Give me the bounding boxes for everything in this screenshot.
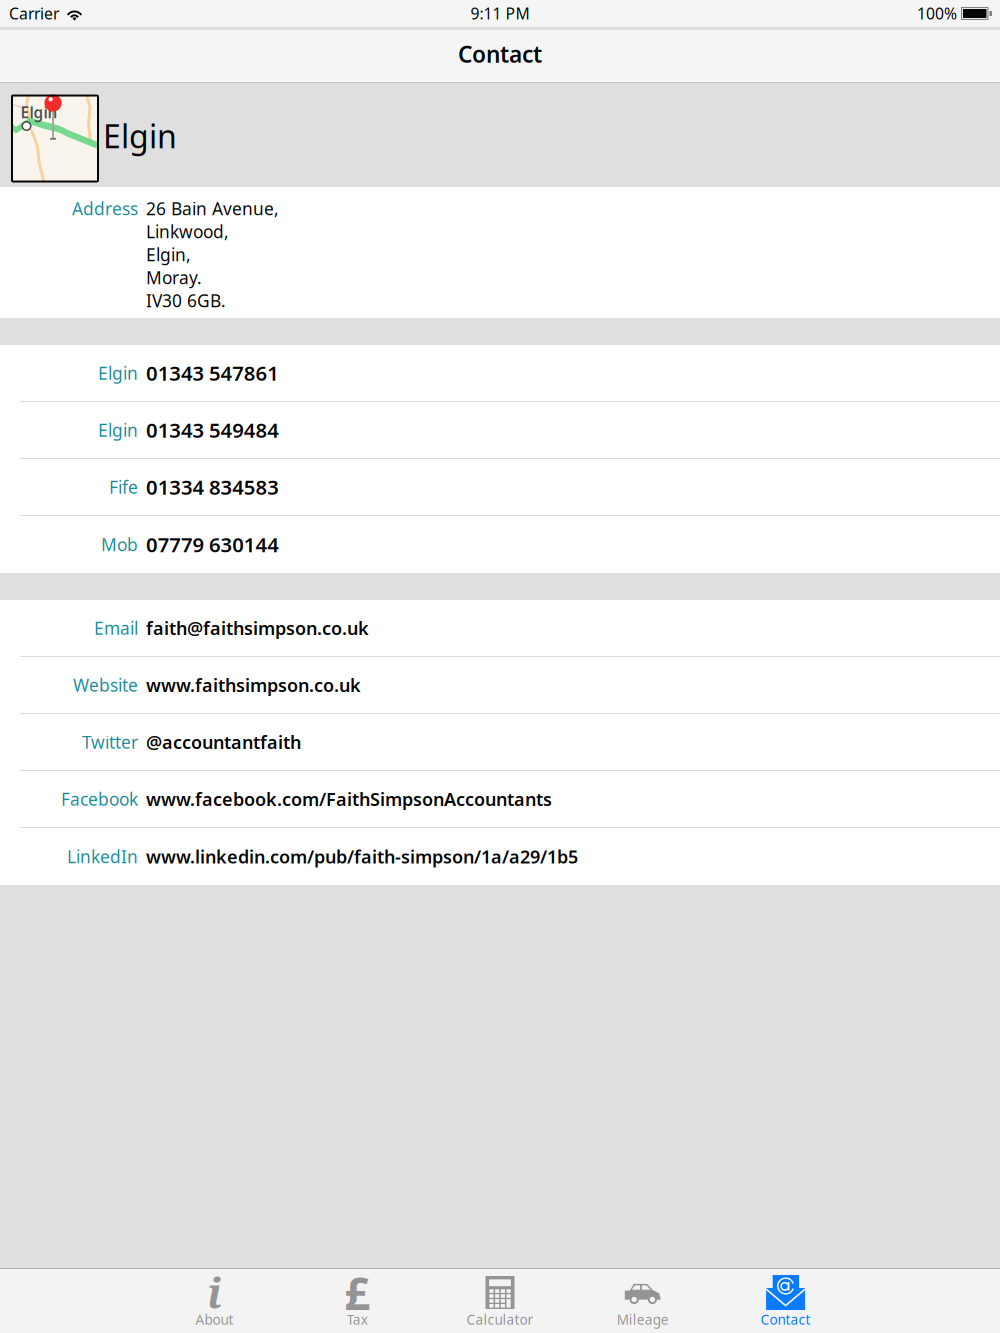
button[interactable]: Elgin	[0, 345, 1000, 402]
staticText: Contact	[458, 39, 542, 69]
staticText: @accountantfaith	[146, 730, 301, 754]
staticText: Carrier	[9, 3, 59, 24]
button[interactable]: Fife	[0, 459, 1000, 516]
staticText: Moray.	[146, 266, 202, 289]
staticText: Contact	[761, 1310, 811, 1329]
staticText: Linkwood,	[146, 220, 229, 243]
button[interactable]: Elgin	[0, 402, 1000, 459]
staticText: 100%	[917, 3, 957, 24]
button[interactable]: Website	[0, 657, 1000, 714]
button[interactable]: Contact	[714, 1269, 857, 1333]
button[interactable]: LinkedIn	[0, 828, 1000, 885]
button[interactable]: Facebook	[0, 771, 1000, 828]
staticText: Elgin	[98, 418, 138, 441]
staticText: Elgin	[103, 114, 177, 157]
staticText: Twitter	[82, 730, 138, 753]
staticText: LinkedIn	[67, 845, 138, 868]
staticText: Elgin,	[146, 243, 191, 266]
staticText: Elgin	[98, 361, 138, 384]
staticText: faith@faithsimpson.co.uk	[146, 616, 369, 640]
staticText: Tax	[347, 1310, 368, 1329]
staticText: 01343 549484	[146, 416, 279, 443]
staticText: Fife	[109, 475, 138, 498]
staticText: Address	[72, 197, 138, 220]
button[interactable]: i	[143, 1269, 286, 1333]
button[interactable]: Mileage	[571, 1269, 714, 1333]
staticText: 26 Bain Avenue,	[146, 197, 279, 220]
staticText: Facebook	[61, 787, 138, 810]
staticText: IV30 6GB.	[146, 289, 226, 312]
staticText: Elgin	[20, 102, 57, 122]
staticText: Calculator	[466, 1310, 533, 1329]
button[interactable]: Mob	[0, 516, 1000, 573]
staticText: Mileage	[617, 1310, 669, 1329]
button[interactable]: Email	[0, 600, 1000, 657]
staticText: £	[344, 1262, 370, 1323]
staticText: 9:11 PM	[470, 3, 529, 24]
button[interactable]: £	[286, 1269, 429, 1333]
staticText: www.linkedin.com/pub/faith-simpson/1a/a2…	[146, 844, 578, 868]
staticText: i	[207, 1264, 222, 1321]
staticText: 07779 630144	[146, 531, 279, 558]
staticText: Website	[73, 673, 138, 696]
button[interactable]: Twitter	[0, 714, 1000, 771]
staticText: 01343 547861	[146, 359, 279, 386]
button[interactable]: Calculator	[429, 1269, 571, 1333]
staticText: Mob	[101, 533, 138, 556]
staticText: About	[195, 1310, 233, 1329]
staticText: www.facebook.com/FaithSimpsonAccountants	[146, 787, 552, 811]
staticText: Email	[94, 616, 138, 639]
staticText: www.faithsimpson.co.uk	[146, 673, 361, 697]
staticText: 01334 834583	[146, 473, 279, 500]
